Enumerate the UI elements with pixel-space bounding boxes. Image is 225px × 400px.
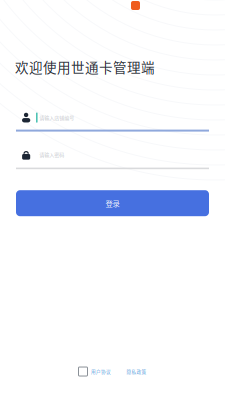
button[interactable]: 同意用户协议 [78, 367, 87, 376]
staticText: 请输入店铺编号 [39, 114, 74, 121]
staticText: 用户协议 [91, 368, 111, 375]
button[interactable]: 登录 [16, 190, 209, 216]
button[interactable]: 隐私政策 [126, 368, 146, 375]
staticText: 登录 [105, 198, 119, 208]
staticText: 请输入密码 [39, 151, 64, 158]
staticText: 欢迎使用世通卡管理端 [15, 57, 155, 77]
button[interactable]: 用户协议 [91, 368, 111, 375]
staticText: 隐私政策 [126, 368, 146, 375]
